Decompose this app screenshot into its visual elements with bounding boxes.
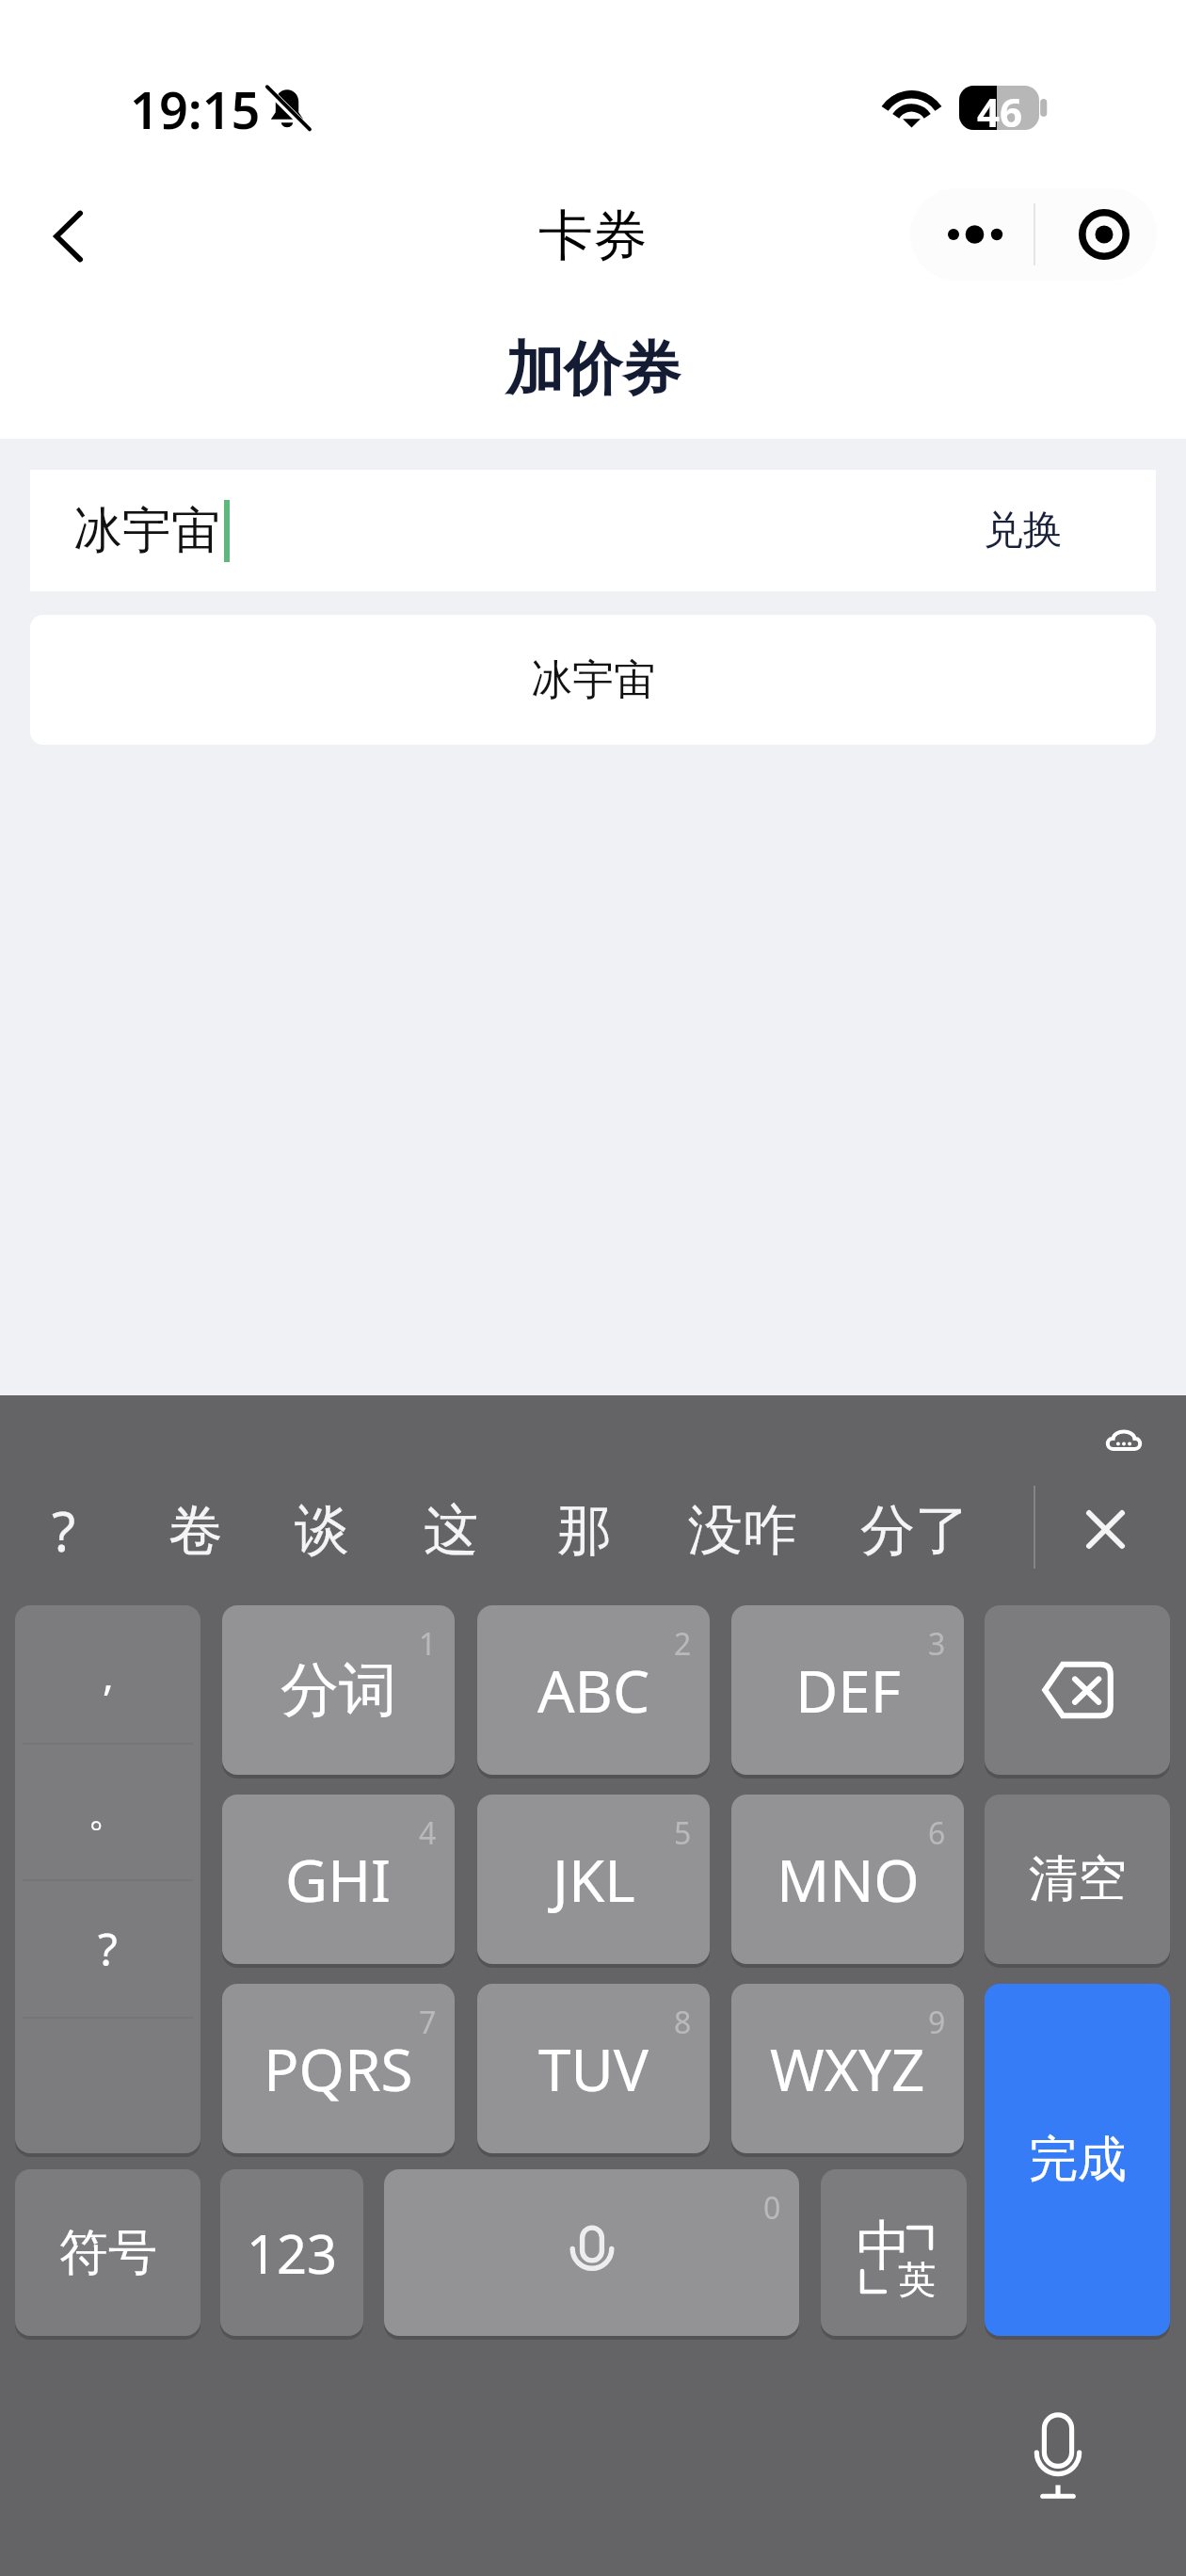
staticText: 。 <box>88 1786 129 1838</box>
staticText: 5 <box>674 1812 692 1854</box>
button[interactable]: GHI <box>222 1795 455 1964</box>
staticText: 3 <box>928 1623 946 1665</box>
staticText: 46 <box>977 85 1023 129</box>
staticText: JKL <box>553 1840 635 1919</box>
button[interactable]: DEF <box>731 1605 964 1775</box>
button[interactable]: 分词 <box>222 1605 455 1775</box>
staticText: TUV <box>538 2029 649 2108</box>
button[interactable]: 没咋 <box>671 1483 814 1577</box>
staticText: ? <box>98 1918 118 1979</box>
staticText: 没咋 <box>688 1496 797 1565</box>
staticText: 冰宇宙 <box>73 500 220 562</box>
button[interactable]: , <box>15 1605 200 2153</box>
staticText: 符号 <box>59 2222 157 2284</box>
staticText: 8 <box>674 2002 692 2043</box>
button[interactable]: More options <box>910 188 1034 281</box>
staticText: 兑换 <box>984 506 1063 555</box>
button[interactable]: Cloud input <box>1087 1409 1161 1469</box>
staticText: 卡券 <box>538 201 648 270</box>
staticText: 7 <box>419 2002 437 2043</box>
button[interactable]: 那 <box>540 1483 629 1577</box>
staticText: DEF <box>795 1650 901 1730</box>
staticText: MNO <box>777 1840 920 1919</box>
button[interactable]: JKL <box>477 1795 710 1964</box>
staticText: 完成 <box>1029 2129 1127 2191</box>
button[interactable]: 谈 <box>278 1483 366 1577</box>
button[interactable]: PQRS <box>222 1984 455 2153</box>
staticText: , <box>103 1646 114 1702</box>
button[interactable]: 冰宇宙 <box>30 615 1156 745</box>
staticText: PQRS <box>264 2029 413 2108</box>
button[interactable]: Close mini program <box>1034 188 1157 281</box>
staticText: 1 <box>419 1623 437 1665</box>
staticText: 中 <box>857 2212 911 2280</box>
button[interactable]: ABC <box>477 1605 710 1775</box>
staticText: 那 <box>557 1496 612 1565</box>
button[interactable]: WXYZ <box>731 1984 964 2153</box>
staticText: 卷 <box>168 1496 223 1565</box>
button[interactable]: TUV <box>477 1984 710 2153</box>
button[interactable]: Voice input <box>1020 2403 1096 2508</box>
staticText: 9 <box>928 2002 946 2043</box>
staticText: 2 <box>674 1623 692 1665</box>
staticText: 4 <box>419 1812 437 1854</box>
button[interactable]: Hide keyboard <box>1053 1480 1157 1578</box>
button[interactable]: 分了 <box>843 1483 986 1577</box>
button[interactable]: 123 <box>220 2169 363 2336</box>
staticText: ? <box>52 1493 76 1568</box>
staticText: ABC <box>537 1650 650 1730</box>
button[interactable]: ? <box>35 1483 93 1577</box>
staticText: 6 <box>928 1812 946 1854</box>
staticText: 分了 <box>860 1496 970 1565</box>
button[interactable]: 符号 <box>15 2169 200 2336</box>
button[interactable]: Backspace <box>985 1605 1170 1775</box>
staticText: GHI <box>285 1840 392 1919</box>
staticText: 123 <box>247 2217 338 2289</box>
button[interactable]: 完成 <box>985 1984 1170 2336</box>
staticText: WXYZ <box>770 2029 925 2108</box>
staticText: 19:15 <box>130 74 261 144</box>
staticText: 冰宇宙 <box>531 654 655 706</box>
button[interactable]: 卷 <box>152 1483 240 1577</box>
button[interactable]: Chinese / English <box>821 2169 967 2336</box>
button[interactable]: Back <box>24 193 111 280</box>
button[interactable]: MNO <box>731 1795 964 1964</box>
staticText: 加价券 <box>505 332 681 406</box>
button[interactable]: 这 <box>407 1483 495 1577</box>
staticText: 谈 <box>295 1496 349 1565</box>
button[interactable]: 冰宇宙 <box>30 470 1156 591</box>
staticText: 英 <box>898 2256 936 2303</box>
staticText: 清空 <box>1029 1848 1127 1910</box>
staticText: 分词 <box>280 1653 397 1727</box>
button[interactable]: Space / voice <box>384 2169 799 2336</box>
staticText: 这 <box>424 1496 478 1565</box>
button[interactable]: 清空 <box>985 1795 1170 1964</box>
staticText: 0 <box>763 2187 781 2229</box>
